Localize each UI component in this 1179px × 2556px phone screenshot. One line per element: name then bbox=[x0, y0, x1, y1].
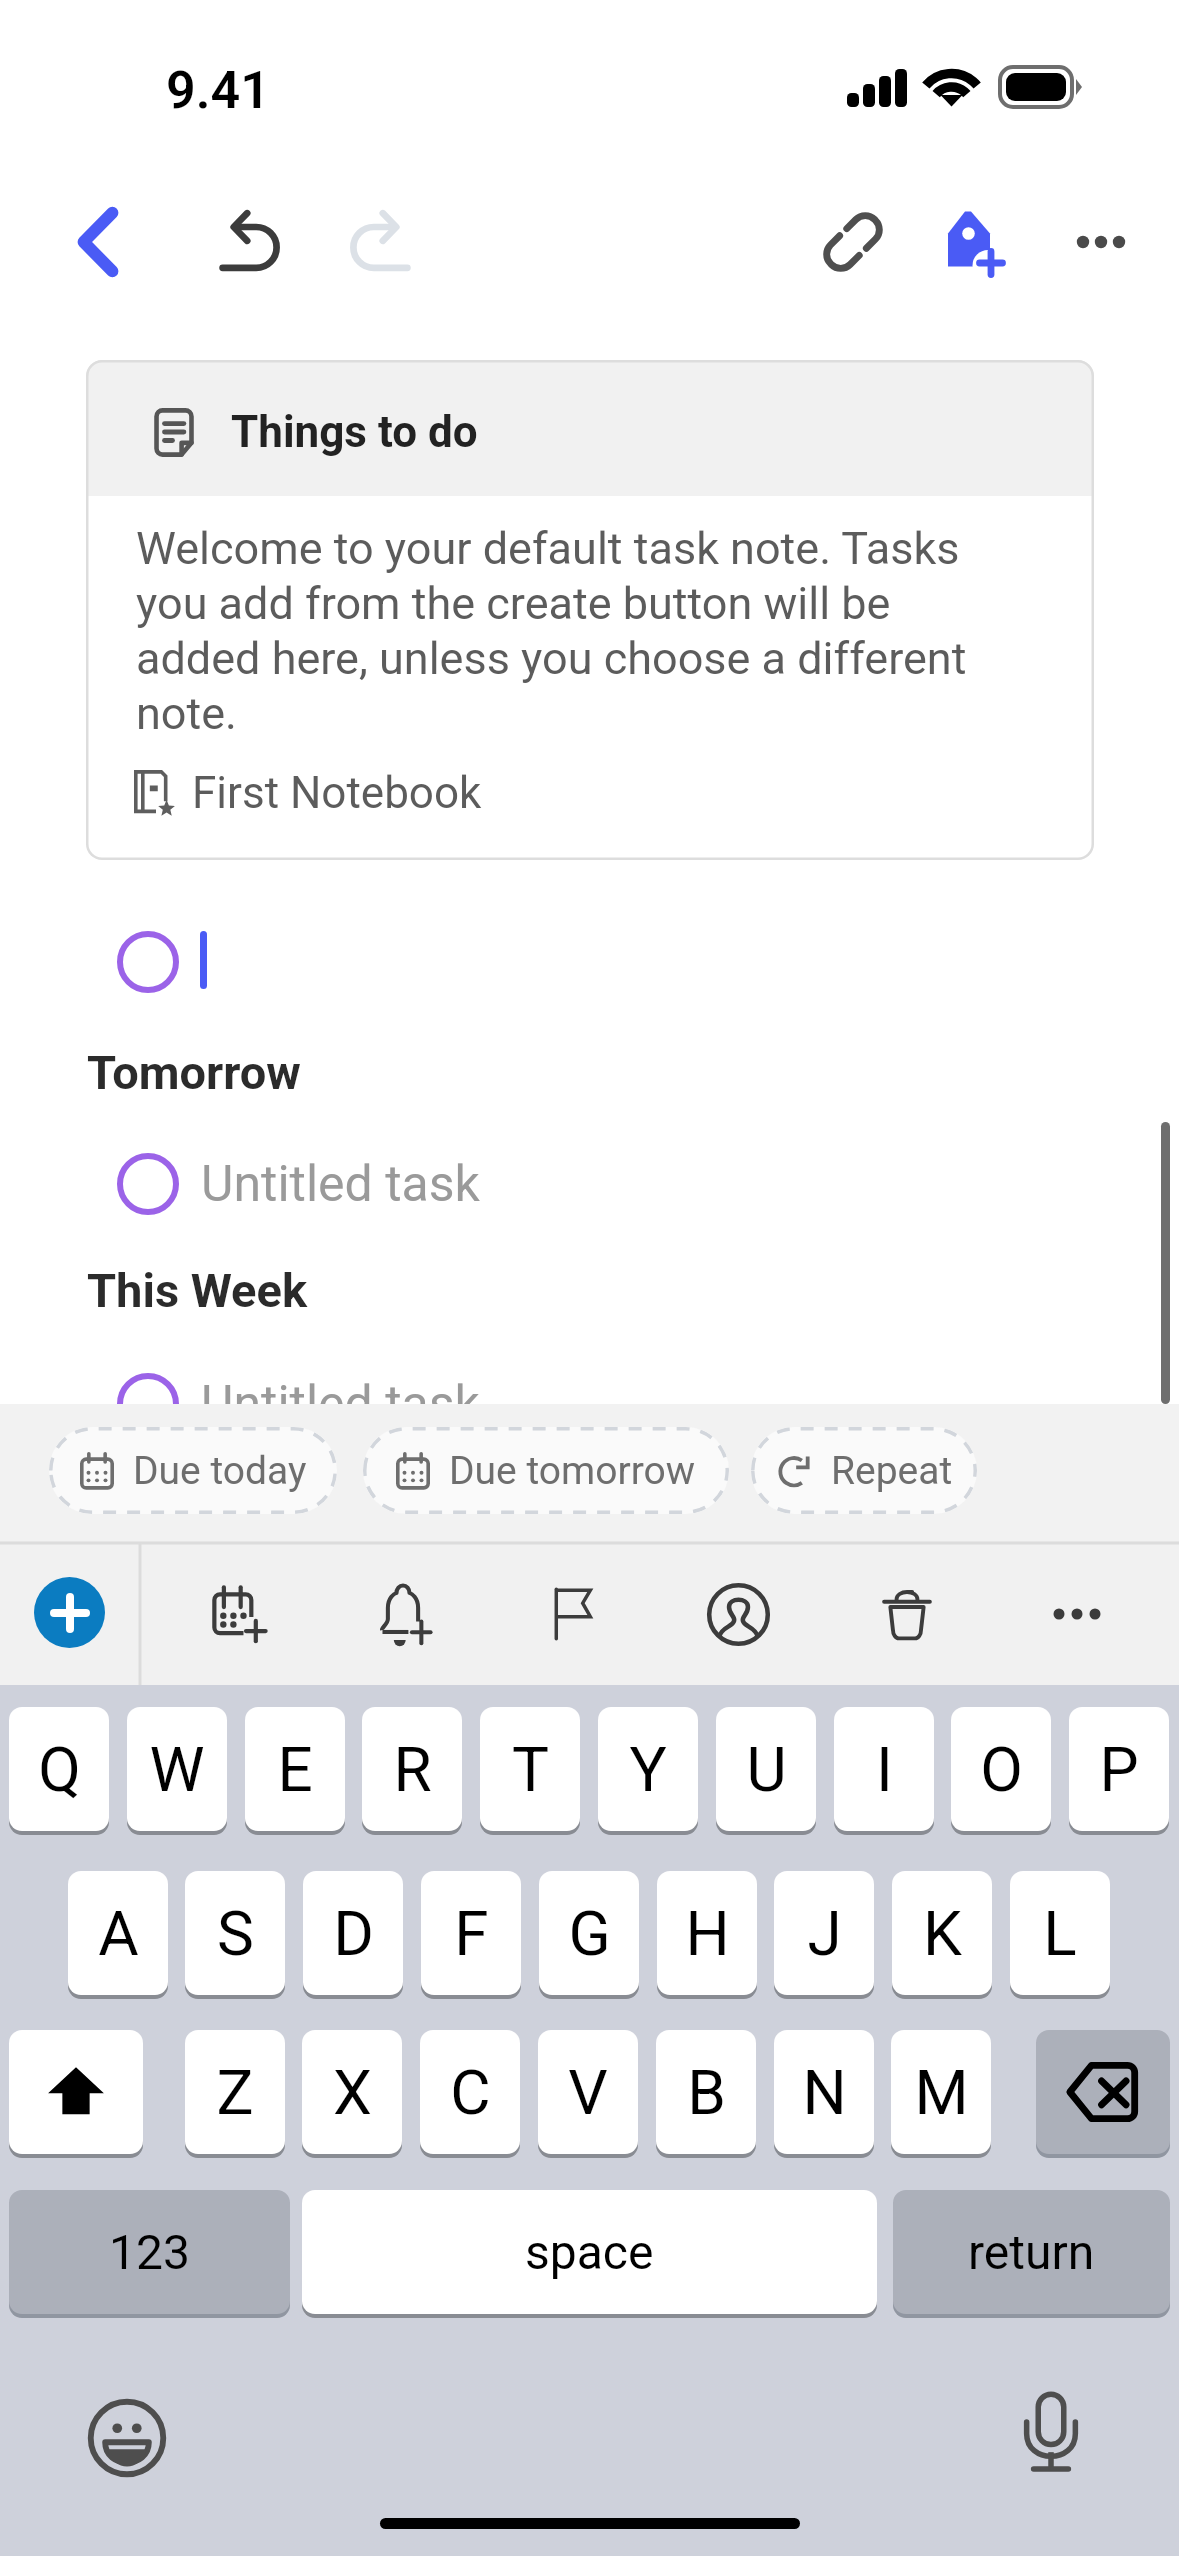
button[interactable]: R bbox=[362, 1707, 462, 1831]
button[interactable]: O bbox=[951, 1707, 1051, 1831]
button[interactable]: G bbox=[539, 1871, 639, 1995]
button[interactable]: Things to do bbox=[86, 360, 1094, 860]
button[interactable]: Set due date bbox=[189, 1564, 289, 1664]
button[interactable]: space bbox=[302, 2190, 877, 2314]
button[interactable]: D bbox=[303, 1871, 403, 1995]
staticText: return bbox=[968, 2224, 1095, 2280]
button[interactable]: T bbox=[480, 1707, 580, 1831]
button[interactable]: Create task bbox=[34, 1577, 105, 1648]
staticText: J bbox=[807, 1897, 842, 1970]
staticText: W bbox=[149, 1733, 205, 1806]
staticText: This Week bbox=[87, 1263, 307, 1318]
button[interactable]: Q bbox=[9, 1707, 109, 1831]
button[interactable]: Backspace bbox=[1036, 2030, 1170, 2154]
button[interactable]: Flag bbox=[525, 1564, 625, 1664]
staticText: Untitled task bbox=[201, 1155, 480, 1214]
button[interactable]: Due tomorrow bbox=[363, 1427, 729, 1514]
button[interactable]: Y bbox=[598, 1707, 698, 1831]
button[interactable]: C bbox=[420, 2030, 520, 2154]
button[interactable]: F bbox=[421, 1871, 521, 1995]
staticText: X bbox=[333, 2056, 372, 2129]
button[interactable]: Untitled task bbox=[117, 1153, 817, 1215]
button[interactable]: V bbox=[538, 2030, 638, 2154]
staticText: Q bbox=[38, 1733, 81, 1806]
staticText: C bbox=[450, 2056, 491, 2129]
button[interactable]: Dictate bbox=[1009, 2390, 1093, 2474]
button[interactable]: L bbox=[1010, 1871, 1110, 1995]
button[interactable]: W bbox=[127, 1707, 227, 1831]
button[interactable]: H bbox=[657, 1871, 757, 1995]
staticText: Due today bbox=[133, 1448, 307, 1494]
button[interactable]: Undo bbox=[194, 187, 304, 297]
button[interactable]: return bbox=[893, 2190, 1170, 2314]
button[interactable]: U bbox=[716, 1707, 816, 1831]
button[interactable]: K bbox=[892, 1871, 992, 1995]
staticText: Untitled task bbox=[201, 1375, 480, 1434]
button[interactable]: X bbox=[302, 2030, 402, 2154]
button[interactable]: Delete bbox=[857, 1564, 957, 1664]
staticText: N bbox=[802, 2056, 847, 2129]
button[interactable]: Untitled task bbox=[117, 1373, 817, 1435]
staticText: V bbox=[568, 2056, 608, 2129]
button[interactable]: P bbox=[1069, 1707, 1169, 1831]
staticText: B bbox=[687, 2056, 726, 2129]
button[interactable]: J bbox=[774, 1871, 874, 1995]
staticText: F bbox=[454, 1897, 489, 1970]
button[interactable]: More bbox=[1027, 1564, 1127, 1664]
button[interactable]: B bbox=[656, 2030, 756, 2154]
staticText: S bbox=[217, 1897, 254, 1970]
staticText: Repeat bbox=[831, 1448, 953, 1494]
staticText: First Notebook bbox=[192, 767, 482, 819]
button[interactable]: N bbox=[774, 2030, 874, 2154]
button[interactable]: Back bbox=[43, 187, 153, 297]
staticText: space bbox=[525, 2224, 654, 2280]
staticText: H bbox=[685, 1897, 730, 1970]
button[interactable]: Assign bbox=[688, 1564, 788, 1664]
button[interactable]: Redo bbox=[326, 187, 436, 297]
button[interactable]: Z bbox=[185, 2030, 285, 2154]
staticText: Z bbox=[216, 2056, 254, 2129]
staticText: Welcome to your default task note. Tasks… bbox=[136, 522, 996, 740]
button[interactable]: S bbox=[185, 1871, 285, 1995]
button[interactable]: Add tag bbox=[920, 187, 1030, 297]
button[interactable]: E bbox=[245, 1707, 345, 1831]
staticText: M bbox=[914, 2056, 969, 2129]
button[interactable]: Emoji bbox=[86, 2397, 168, 2479]
staticText: O bbox=[980, 1733, 1023, 1806]
staticText: 9.41 bbox=[166, 60, 270, 121]
staticText: Due tomorrow bbox=[449, 1448, 696, 1494]
button[interactable]: Insert link bbox=[798, 187, 908, 297]
staticText: K bbox=[923, 1897, 962, 1970]
staticText: A bbox=[98, 1897, 139, 1970]
button[interactable]: Repeat bbox=[751, 1427, 977, 1514]
staticText: T bbox=[512, 1733, 549, 1806]
button[interactable]: 123 bbox=[9, 2190, 290, 2314]
button[interactable]: Due today bbox=[49, 1427, 337, 1514]
staticText: 123 bbox=[109, 2224, 190, 2280]
staticText: P bbox=[1099, 1733, 1139, 1806]
staticText: E bbox=[277, 1733, 313, 1806]
staticText: R bbox=[393, 1733, 432, 1806]
button[interactable]: I bbox=[834, 1707, 934, 1831]
staticText: U bbox=[746, 1733, 787, 1806]
button[interactable]: More options bbox=[1046, 187, 1156, 297]
staticText: Y bbox=[629, 1733, 667, 1806]
staticText: L bbox=[1043, 1897, 1077, 1970]
button[interactable]: M bbox=[891, 2030, 991, 2154]
staticText: I bbox=[876, 1733, 893, 1806]
button[interactable]: A bbox=[68, 1871, 168, 1995]
staticText: G bbox=[568, 1897, 611, 1970]
button[interactable]: Shift bbox=[9, 2030, 143, 2154]
button[interactable]: Set reminder bbox=[353, 1564, 453, 1664]
staticText: D bbox=[333, 1897, 374, 1970]
staticText: Things to do bbox=[231, 406, 478, 458]
staticText: Tomorrow bbox=[87, 1045, 301, 1100]
